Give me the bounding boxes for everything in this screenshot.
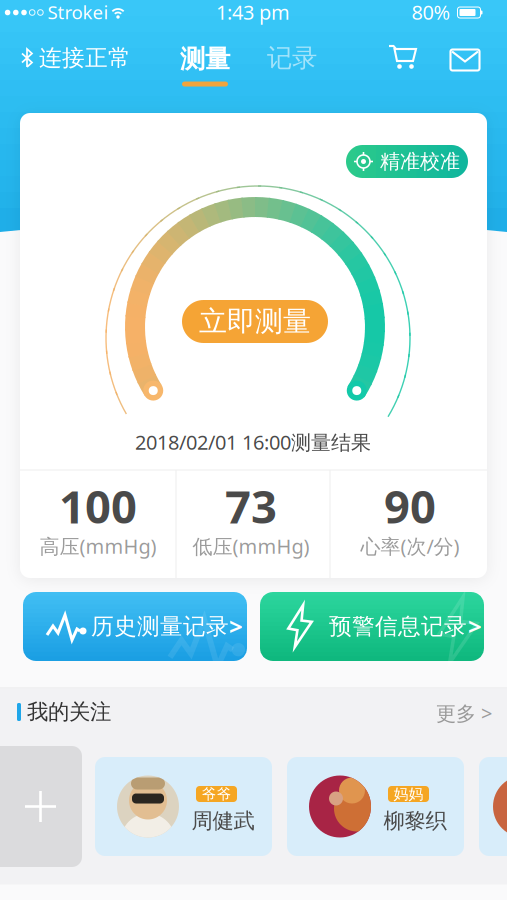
staticText: Strokei: [47, 0, 108, 24]
staticText: 立即测量: [199, 304, 311, 339]
staticText: 连接正常: [39, 44, 131, 72]
staticText: >: [468, 610, 482, 642]
button[interactable]: 预警信息记录: [260, 592, 484, 661]
button[interactable]: 测量: [180, 43, 230, 86]
button[interactable]: 妈妈: [287, 757, 464, 856]
staticText: 柳黎织: [383, 808, 446, 834]
staticText: 100: [59, 476, 137, 536]
staticText: 心率(次/分): [360, 533, 459, 559]
button[interactable]: [479, 757, 507, 856]
staticText: 妈妈: [393, 785, 423, 803]
staticText: 80%: [411, 0, 450, 25]
staticText: 1:43 pm: [216, 0, 290, 25]
button[interactable]: 历史测量记录: [23, 592, 247, 661]
staticText: 历史测量记录: [91, 613, 229, 640]
staticText: 精准校准: [380, 149, 460, 174]
staticText: 更多 >: [436, 700, 492, 726]
staticText: >: [229, 610, 243, 642]
button[interactable]: 爷爷: [95, 757, 272, 856]
button[interactable]: [0, 746, 82, 867]
button[interactable]: 购物车: [389, 44, 417, 74]
staticText: 我的关注: [27, 699, 111, 725]
button[interactable]: 立即测量: [182, 300, 328, 343]
button[interactable]: 更多 >: [436, 700, 492, 726]
staticText: 周健武: [191, 808, 254, 834]
staticText: 测量: [180, 43, 230, 74]
button[interactable]: 记录: [267, 42, 317, 73]
staticText: 爷爷: [201, 785, 231, 803]
button[interactable]: 精准校准: [346, 145, 468, 178]
staticText: 低压(mmHg): [192, 533, 309, 559]
staticText: 高压(mmHg): [39, 533, 156, 559]
staticText: 73: [225, 476, 277, 536]
staticText: 90: [384, 476, 436, 536]
staticText: 预警信息记录: [329, 613, 467, 640]
button[interactable]: 连接正常: [21, 44, 131, 72]
staticText: 记录: [267, 42, 317, 73]
button[interactable]: 消息: [450, 49, 479, 70]
staticText: 2018/02/01 16:00测量结果: [135, 429, 371, 455]
